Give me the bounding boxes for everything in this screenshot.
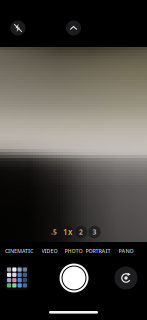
button[interactable]: Photo library — [5, 266, 29, 290]
staticText: PANO — [118, 247, 133, 255]
button[interactable]: 3 — [88, 225, 101, 238]
button[interactable]: More camera controls — [61, 16, 85, 40]
staticText: PHOTO — [64, 247, 82, 255]
staticText: 1x — [63, 227, 72, 237]
button[interactable]: Flash off — [6, 16, 30, 40]
button[interactable]: PANO — [109, 244, 143, 257]
button[interactable]: 1x — [61, 225, 74, 238]
button[interactable]: PORTRAIT — [81, 244, 115, 257]
staticText: CINEMATIC — [5, 247, 33, 255]
button[interactable]: Switch camera — [113, 265, 139, 291]
button[interactable]: .5 — [47, 225, 60, 238]
staticText: .5 — [51, 228, 57, 236]
button[interactable]: VIDEO — [32, 244, 66, 257]
button[interactable]: PHOTO — [56, 244, 90, 257]
staticText: 2 — [79, 228, 83, 236]
button[interactable]: 2 — [74, 225, 87, 238]
button[interactable]: CINEMATIC — [2, 244, 36, 257]
staticText: VIDEO — [41, 247, 57, 255]
button[interactable]: Take photo — [58, 262, 90, 294]
staticText: 3 — [92, 228, 96, 236]
staticText: PORTRAIT — [85, 247, 110, 255]
